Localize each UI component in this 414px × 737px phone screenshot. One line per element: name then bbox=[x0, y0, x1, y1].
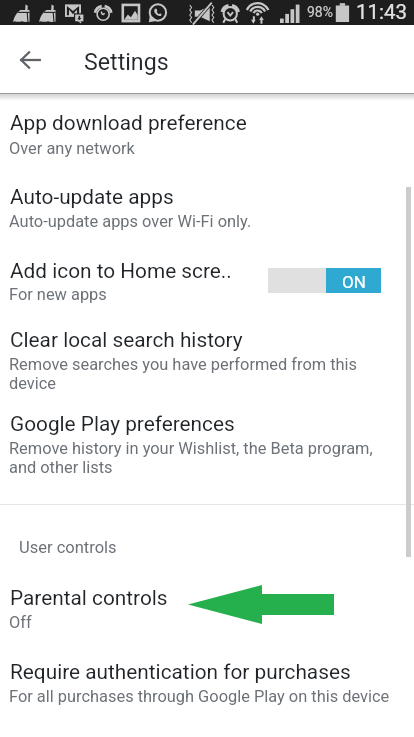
staticText: User controls bbox=[19, 538, 117, 557]
button[interactable] bbox=[0, 401, 414, 489]
staticText: Remove searches you have performed from … bbox=[9, 355, 373, 393]
button[interactable] bbox=[0, 640, 414, 714]
staticText: For all purchases through Google Play on… bbox=[9, 687, 390, 706]
staticText: Settings bbox=[84, 48, 169, 75]
staticText: Require authentication for purchases bbox=[10, 660, 351, 684]
staticText: Auto-update apps over Wi-Fi only. bbox=[9, 212, 252, 231]
staticText: 98% bbox=[307, 4, 333, 20]
button[interactable] bbox=[0, 560, 414, 634]
staticText: For new apps bbox=[9, 285, 107, 304]
button[interactable] bbox=[0, 247, 414, 317]
button[interactable] bbox=[0, 317, 414, 401]
staticText: Google Play preferences bbox=[10, 412, 235, 436]
button[interactable]: Back bbox=[9, 37, 53, 81]
staticText: Off bbox=[9, 613, 32, 632]
button[interactable] bbox=[0, 101, 414, 174]
staticText: Over any network bbox=[9, 139, 135, 158]
staticText: Remove history in your Wishlist, the Bet… bbox=[9, 439, 397, 477]
staticText: App download preference bbox=[10, 111, 247, 135]
staticText: Parental controls bbox=[10, 586, 168, 610]
staticText: Clear local search history bbox=[10, 328, 243, 352]
staticText: 11:43 bbox=[356, 0, 408, 24]
button[interactable] bbox=[0, 174, 414, 247]
staticText: ON bbox=[342, 272, 366, 292]
staticText: Auto-update apps bbox=[10, 185, 174, 209]
staticText: Add icon to Home scre.. bbox=[10, 259, 232, 283]
